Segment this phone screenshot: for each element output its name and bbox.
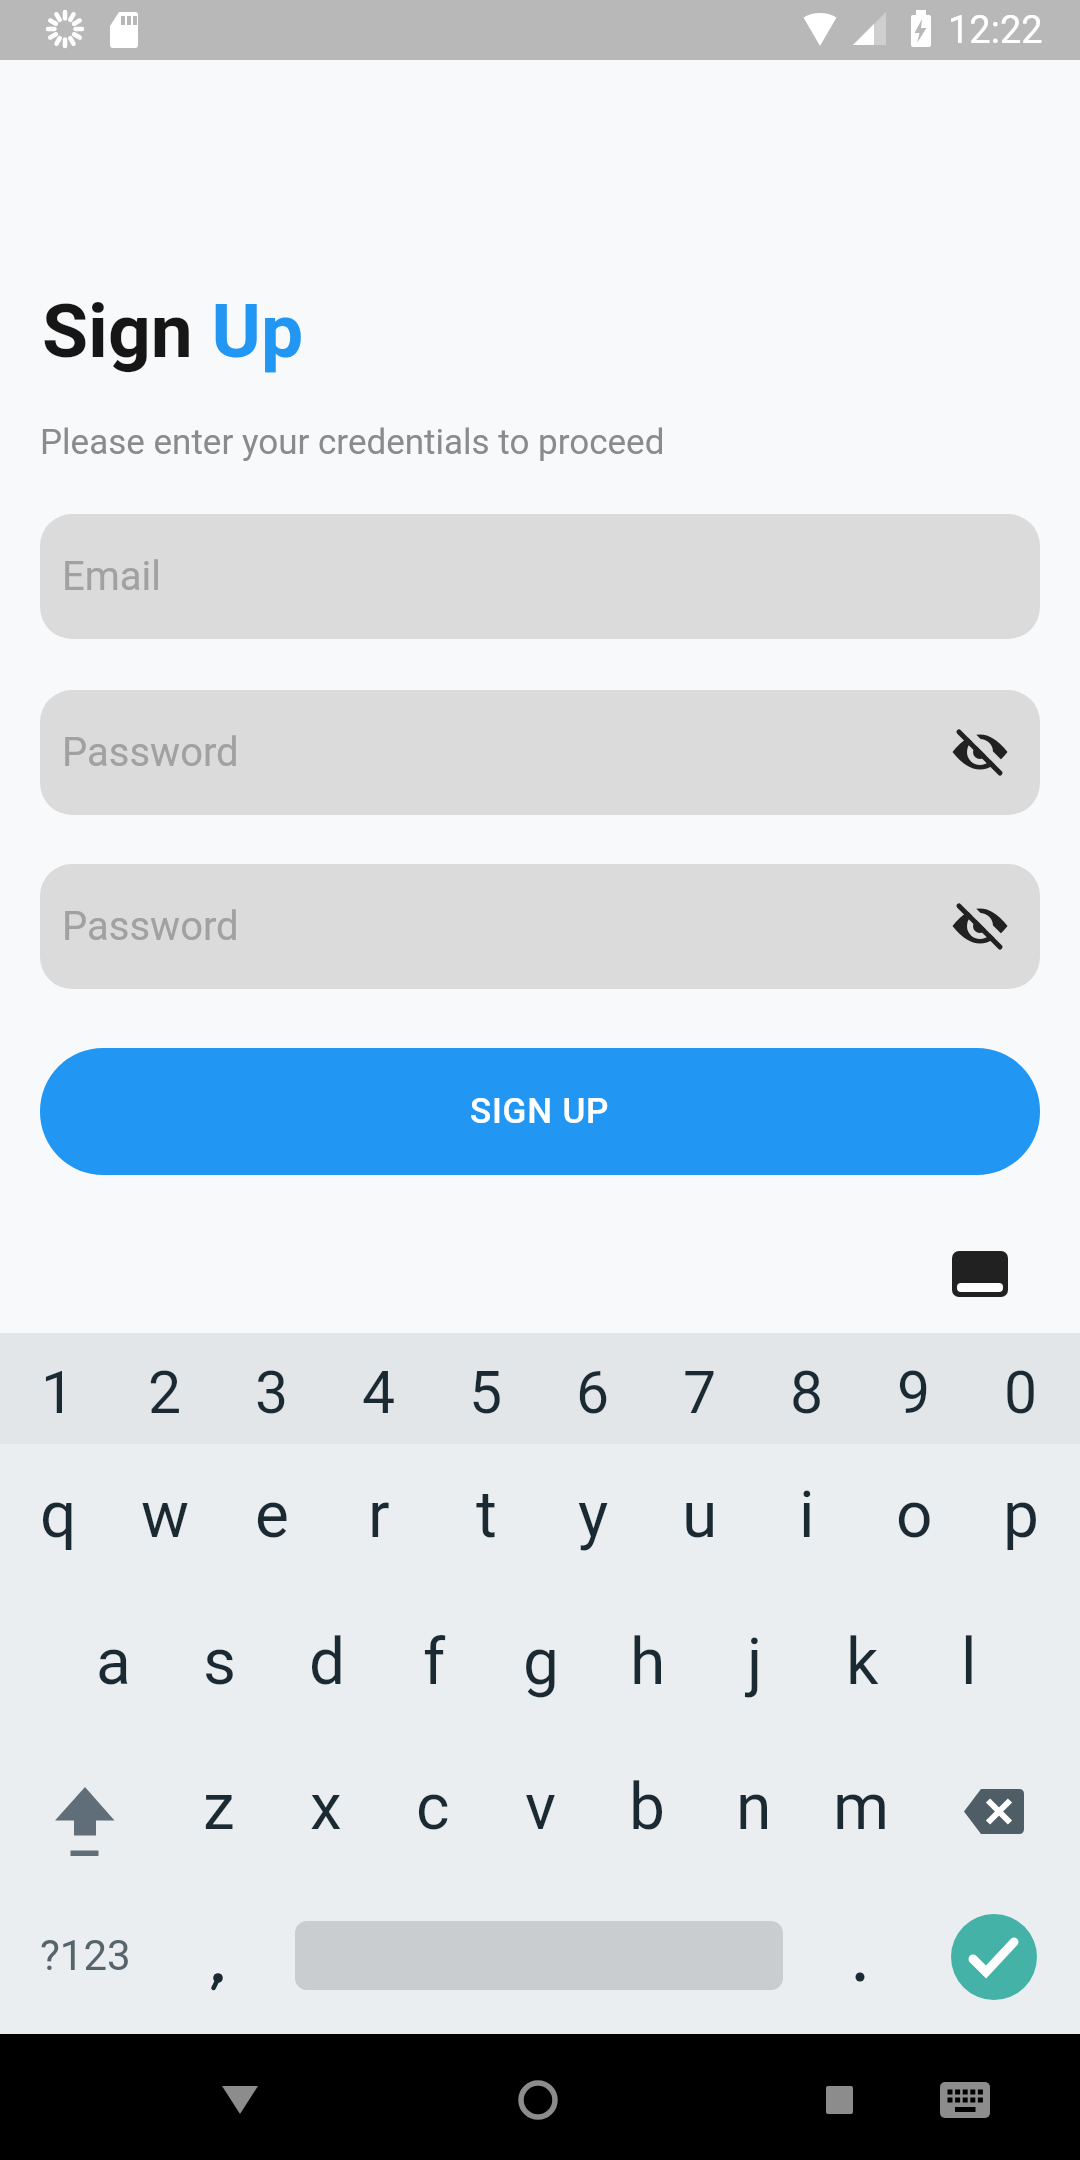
staticText: a [96, 1625, 131, 1700]
button[interactable]: v [487, 1734, 593, 1880]
staticText: 12:22 [948, 8, 1043, 53]
staticText: 8 [790, 1358, 824, 1427]
staticText: l [961, 1625, 977, 1700]
staticText: z [203, 1770, 235, 1845]
staticText: 3 [255, 1358, 289, 1427]
staticText: 6 [576, 1358, 610, 1427]
button[interactable]: Password [40, 864, 1040, 989]
staticText: Password [62, 903, 239, 950]
button[interactable] [946, 718, 1014, 786]
button[interactable] [786, 2046, 894, 2154]
staticText: g [523, 1625, 559, 1700]
staticText: k [846, 1625, 879, 1700]
button[interactable]: 1 [5, 1319, 111, 1465]
button[interactable]: b [594, 1734, 700, 1880]
button[interactable] [951, 1914, 1037, 2000]
button[interactable]: 9 [861, 1319, 967, 1465]
staticText: h [630, 1625, 666, 1700]
button[interactable]: Email [40, 514, 1040, 639]
button[interactable]: y [540, 1442, 646, 1588]
staticText: Password [62, 729, 239, 776]
button[interactable]: f [381, 1589, 487, 1735]
button[interactable] [946, 892, 1014, 960]
button[interactable]: 3 [219, 1319, 325, 1465]
staticText: m [833, 1770, 890, 1845]
button[interactable]: d [274, 1589, 380, 1735]
button[interactable]: SIGN UP [40, 1048, 1040, 1175]
button[interactable] [186, 2046, 294, 2154]
staticText: 2 [148, 1358, 182, 1427]
button[interactable]: p [968, 1442, 1074, 1588]
button[interactable]: 7 [647, 1319, 753, 1465]
staticText: o [896, 1478, 933, 1553]
staticText: v [525, 1770, 556, 1845]
button[interactable]: n [701, 1734, 807, 1880]
button[interactable]: q [5, 1442, 111, 1588]
staticText: u [682, 1478, 718, 1553]
button[interactable]: k [809, 1589, 915, 1735]
staticText: p [1003, 1478, 1039, 1553]
staticText: j [747, 1625, 763, 1700]
button[interactable]: 5 [433, 1319, 539, 1465]
staticText: Email [62, 553, 162, 600]
button[interactable]: z [166, 1734, 272, 1880]
button[interactable] [24, 1752, 144, 1872]
button[interactable]: w [112, 1442, 218, 1588]
button[interactable]: a [60, 1589, 166, 1735]
staticText: 1 [41, 1358, 75, 1427]
staticText: 0 [1004, 1358, 1038, 1427]
staticText: t [476, 1478, 497, 1553]
button[interactable]: Password [40, 690, 1040, 815]
button[interactable] [486, 2046, 594, 2154]
button[interactable]: ?123 [32, 1882, 138, 2028]
staticText: d [309, 1625, 346, 1700]
staticText: s [203, 1625, 237, 1700]
staticText: 9 [897, 1358, 931, 1427]
button[interactable] [952, 1251, 1008, 1297]
button[interactable]: h [595, 1589, 701, 1735]
button[interactable]: t [433, 1442, 539, 1588]
button[interactable] [166, 1900, 272, 2020]
staticText: Please enter your credentials to proceed [40, 422, 665, 463]
button[interactable]: s [167, 1589, 273, 1735]
staticText: x [310, 1770, 342, 1845]
button[interactable]: e [219, 1442, 325, 1588]
button[interactable]: c [380, 1734, 486, 1880]
staticText: f [423, 1625, 446, 1700]
button[interactable]: 8 [754, 1319, 860, 1465]
button[interactable]: 6 [540, 1319, 646, 1465]
staticText: i [799, 1478, 815, 1553]
button[interactable]: i [754, 1442, 860, 1588]
staticText: c [416, 1770, 450, 1845]
staticText: q [40, 1478, 77, 1553]
button[interactable]: l [916, 1589, 1022, 1735]
staticText: n [736, 1770, 772, 1845]
staticText: e [255, 1478, 289, 1553]
button[interactable]: 2 [112, 1319, 218, 1465]
staticText: 4 [362, 1358, 396, 1427]
button[interactable]: g [488, 1589, 594, 1735]
staticText: 7 [683, 1358, 717, 1427]
staticText: r [368, 1478, 390, 1553]
button[interactable]: u [647, 1442, 753, 1588]
button[interactable] [940, 1752, 1060, 1872]
button[interactable]: o [861, 1442, 967, 1588]
staticText: w [141, 1478, 190, 1553]
button[interactable]: 0 [968, 1319, 1074, 1465]
staticText: Sign Up [42, 287, 304, 375]
button[interactable]: 4 [326, 1319, 432, 1465]
staticText: ?123 [40, 1931, 131, 1980]
staticText: y [578, 1478, 609, 1553]
button[interactable]: j [702, 1589, 808, 1735]
staticText: b [629, 1770, 665, 1845]
staticText: SIGN UP [470, 1091, 610, 1132]
button[interactable] [920, 2046, 1028, 2154]
button[interactable] [806, 1900, 912, 2020]
button[interactable]: x [273, 1734, 379, 1880]
staticText: 5 [469, 1358, 503, 1427]
button[interactable]: m [808, 1734, 914, 1880]
button[interactable]: r [326, 1442, 432, 1588]
